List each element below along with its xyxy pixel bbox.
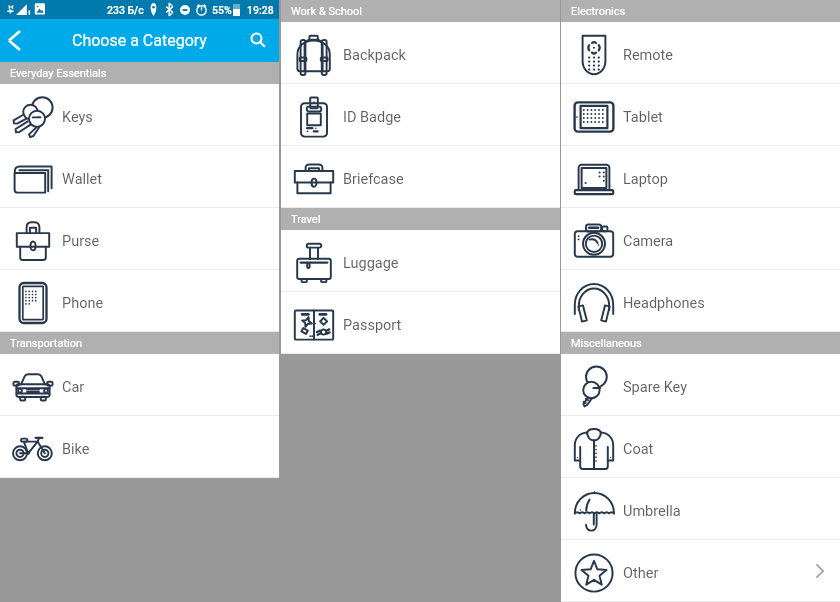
button[interactable]: Back bbox=[0, 19, 29, 62]
button[interactable]: Backpack bbox=[281, 22, 560, 84]
staticText: Coat bbox=[623, 441, 654, 458]
staticText: Everyday Essentials bbox=[10, 67, 107, 80]
staticText: Briefcase bbox=[343, 171, 404, 188]
button[interactable]: Remote bbox=[561, 22, 840, 84]
staticText: Wallet bbox=[62, 171, 103, 188]
staticText: Backpack bbox=[343, 47, 406, 64]
button[interactable]: Briefcase bbox=[281, 146, 560, 208]
button[interactable]: Luggage bbox=[281, 230, 560, 292]
staticText: 233 Б/с bbox=[107, 4, 144, 16]
button[interactable]: Camera bbox=[561, 208, 840, 270]
button[interactable]: Car bbox=[0, 354, 279, 416]
button[interactable]: Wallet bbox=[0, 146, 279, 208]
staticText: Camera bbox=[623, 233, 674, 250]
staticText: 19:28 bbox=[247, 4, 274, 16]
button[interactable]: Phone bbox=[0, 270, 279, 332]
button[interactable]: ID Badge bbox=[281, 84, 560, 146]
staticText: 55% bbox=[212, 4, 232, 16]
staticText: Car bbox=[62, 379, 85, 396]
button[interactable]: Keys bbox=[0, 84, 279, 146]
button[interactable]: Passport bbox=[281, 292, 560, 354]
button[interactable]: Coat bbox=[561, 416, 840, 478]
staticText: Umbrella bbox=[623, 503, 681, 520]
button[interactable]: Tablet bbox=[561, 84, 840, 146]
staticText: Spare Key bbox=[623, 379, 688, 396]
staticText: Other bbox=[623, 565, 659, 582]
staticText: Laptop bbox=[623, 171, 668, 188]
staticText: Keys bbox=[62, 109, 93, 126]
staticText: ID Badge bbox=[343, 109, 401, 126]
staticText: Work & School bbox=[291, 5, 363, 18]
button[interactable]: Headphones bbox=[561, 270, 840, 332]
staticText: Choose a Category bbox=[72, 31, 207, 50]
staticText: Phone bbox=[62, 295, 104, 312]
staticText: Transportation bbox=[10, 337, 83, 350]
staticText: Miscellaneous bbox=[571, 337, 642, 350]
staticText: Headphones bbox=[623, 295, 705, 312]
button[interactable]: Bike bbox=[0, 416, 279, 478]
button[interactable]: Umbrella bbox=[561, 478, 840, 540]
button[interactable]: Search bbox=[240, 19, 276, 62]
staticText: Remote bbox=[623, 47, 674, 64]
staticText: Purse bbox=[62, 233, 100, 250]
button[interactable]: Other bbox=[561, 540, 840, 602]
staticText: Luggage bbox=[343, 255, 399, 272]
staticText: Tablet bbox=[623, 109, 663, 126]
staticText: Bike bbox=[62, 441, 90, 458]
staticText: Passport bbox=[343, 317, 402, 334]
staticText: Electronics bbox=[571, 5, 626, 18]
button[interactable]: Purse bbox=[0, 208, 279, 270]
staticText: Travel bbox=[291, 213, 321, 226]
button[interactable]: Spare Key bbox=[561, 354, 840, 416]
button[interactable]: Laptop bbox=[561, 146, 840, 208]
